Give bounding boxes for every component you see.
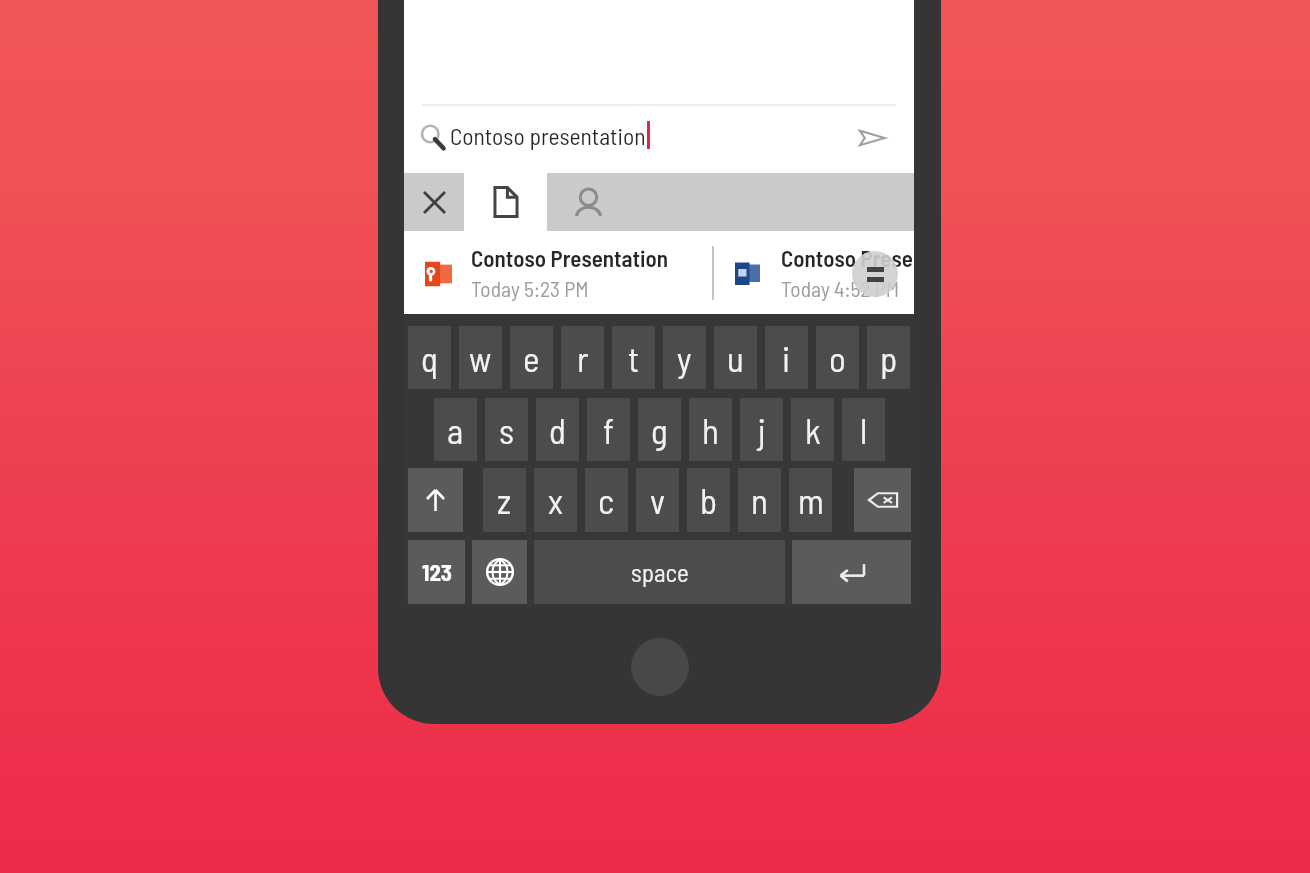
staticText: p [880,337,898,379]
staticText: q [421,337,439,379]
button[interactable]: n [738,468,781,532]
button[interactable]: Home [631,638,689,696]
staticText: v [650,479,665,521]
staticText: a [447,409,464,451]
staticText: s [499,409,514,451]
staticText: r [577,337,589,379]
staticText: w [469,337,492,379]
button[interactable]: m [789,468,832,532]
button[interactable] [404,231,712,313]
button[interactable] [714,231,914,313]
button[interactable]: Change language [472,540,527,604]
button[interactable]: h [689,398,732,461]
staticText: d [549,409,566,451]
staticText: b [700,479,717,521]
button[interactable]: b [687,468,730,532]
staticText: u [727,337,744,379]
button[interactable]: z [483,468,526,532]
button[interactable]: w [459,326,502,389]
button[interactable]: r [561,326,604,389]
staticText: m [798,479,824,521]
staticText: Today 4:52 PM [781,275,900,301]
button[interactable]: v [636,468,679,532]
button[interactable]: i [765,326,808,389]
staticText: l [860,409,868,451]
button[interactable]: Resize panel [852,251,898,297]
button[interactable]: s [485,398,528,461]
staticText: i [782,337,791,379]
button[interactable]: People [547,173,630,231]
button[interactable]: space [534,540,785,604]
button[interactable]: f [587,398,630,461]
button[interactable]: y [663,326,706,389]
staticText: Contoso Presentation [471,244,669,272]
button[interactable]: a [434,398,477,461]
button[interactable]: q [408,326,451,389]
button[interactable]: Backspace [854,468,911,532]
staticText: j [758,409,766,451]
button[interactable]: Numbers [408,540,465,604]
staticText: t [628,337,640,379]
staticText: 123 [422,558,452,586]
button[interactable]: u [714,326,757,389]
staticText: Today 5:23 PM [471,275,589,301]
button[interactable] [404,108,914,172]
staticText: h [702,409,719,451]
button[interactable]: g [638,398,681,461]
button[interactable]: Documents [464,173,547,231]
button[interactable]: c [585,468,628,532]
staticText: f [603,409,615,451]
staticText: Contoso presentation [450,121,646,149]
staticText: y [677,337,692,379]
button[interactable]: d [536,398,579,461]
button[interactable]: k [791,398,834,461]
staticText: n [751,479,768,521]
button[interactable]: Search [852,118,892,158]
staticText: k [805,409,821,451]
staticText: o [829,337,846,379]
staticText: z [497,479,512,521]
staticText: space [631,557,689,587]
button[interactable]: j [740,398,783,461]
button[interactable]: t [612,326,655,389]
staticText: Contoso Prese [781,244,913,272]
staticText: x [548,479,563,521]
button[interactable]: Enter [792,540,911,604]
staticText: c [598,479,615,521]
staticText: g [651,409,668,451]
button[interactable]: Close search [404,173,464,231]
button[interactable]: p [867,326,910,389]
button[interactable]: Shift [408,468,463,532]
button[interactable]: e [510,326,553,389]
staticText: e [523,337,540,379]
button[interactable]: o [816,326,859,389]
button[interactable]: x [534,468,577,532]
button[interactable]: l [842,398,885,461]
